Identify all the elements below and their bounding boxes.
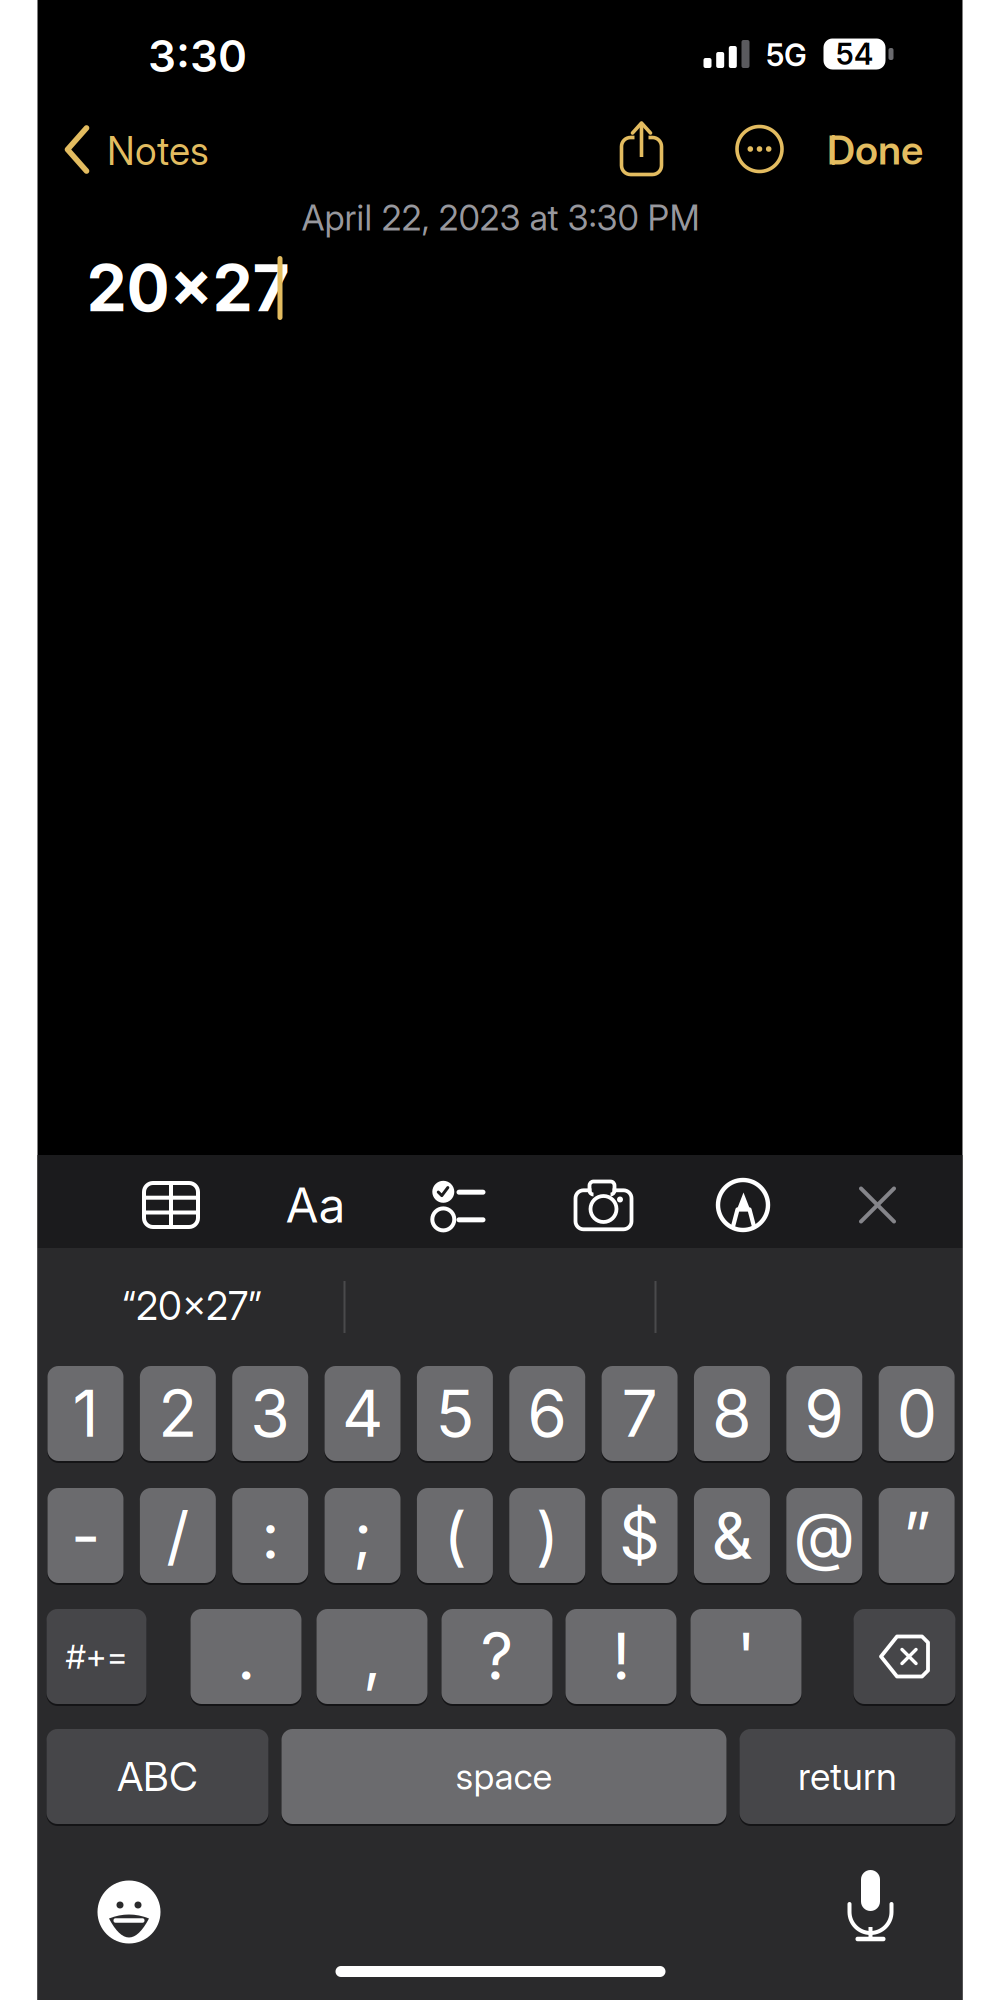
button[interactable]: ? (441, 1609, 552, 1704)
button[interactable]: Done (827, 126, 923, 174)
button[interactable]: “20x27” (122, 1283, 262, 1329)
staticText: ' (736, 1618, 755, 1695)
button[interactable]: . (190, 1609, 301, 1704)
staticText: 9 (804, 1375, 844, 1452)
button[interactable]: ) (509, 1488, 585, 1583)
button[interactable]: Insert photo (574, 1183, 632, 1230)
staticText: 2 (158, 1375, 197, 1452)
button[interactable]: Emoji (97, 1880, 160, 1943)
staticText: “20x27” (122, 1283, 262, 1329)
button[interactable]: Markup (717, 1179, 769, 1231)
button[interactable]: ” (879, 1488, 955, 1583)
button[interactable]: 0 (879, 1366, 955, 1461)
button[interactable]: 7 (602, 1366, 678, 1461)
staticText: ” (903, 1497, 931, 1574)
staticText: ! (612, 1618, 630, 1695)
button[interactable]: & (694, 1488, 770, 1583)
staticText: 1 (72, 1375, 98, 1452)
button[interactable]: - (47, 1488, 123, 1583)
button[interactable]: 9 (786, 1366, 862, 1461)
staticText: @ (793, 1497, 855, 1574)
staticText: & (711, 1497, 752, 1574)
staticText: 4 (342, 1375, 383, 1452)
staticText: 5 (435, 1375, 474, 1452)
staticText: 3 (250, 1375, 290, 1452)
button[interactable]: 5 (417, 1366, 493, 1461)
button[interactable]: Share (619, 120, 663, 174)
staticText: Aa (285, 1176, 345, 1234)
button[interactable]: 1 (47, 1366, 123, 1461)
staticText: / (166, 1497, 189, 1574)
button[interactable]: 6 (509, 1366, 585, 1461)
button[interactable]: @ (786, 1488, 862, 1583)
staticText: 8 (712, 1375, 752, 1452)
staticText: Done (827, 126, 923, 174)
button[interactable]: ( (417, 1488, 493, 1583)
staticText: ? (480, 1618, 513, 1695)
staticText: return (798, 1754, 897, 1799)
button[interactable]: : (232, 1488, 308, 1583)
button[interactable]: Close toolbar (861, 1188, 894, 1221)
button[interactable]: 8 (694, 1366, 770, 1461)
button[interactable]: $ (602, 1488, 678, 1583)
staticText: - (71, 1497, 100, 1574)
staticText: 3:30 (148, 29, 247, 83)
staticText: ; (353, 1497, 372, 1574)
staticText: ) (536, 1497, 559, 1574)
staticText: ABC (117, 1752, 198, 1801)
button[interactable]: return (739, 1729, 955, 1824)
staticText: 7 (622, 1375, 658, 1452)
staticText: 20x27 (86, 249, 289, 327)
button[interactable]: space (281, 1729, 726, 1824)
button[interactable]: 2 (140, 1366, 216, 1461)
staticText: $ (619, 1497, 660, 1574)
button[interactable]: #+= (46, 1609, 146, 1704)
staticText: . (237, 1618, 255, 1695)
staticText: space (455, 1755, 552, 1798)
button[interactable]: Notes (59, 125, 209, 175)
staticText: April 22, 2023 at 3:30 PM (301, 197, 699, 239)
button[interactable]: ' (690, 1609, 801, 1704)
button[interactable]: 3 (232, 1366, 308, 1461)
staticText: : (261, 1497, 279, 1574)
staticText: 5G (766, 36, 807, 73)
staticText: Notes (107, 128, 209, 174)
button[interactable]: More (736, 126, 782, 172)
button[interactable]: Checklist (430, 1181, 487, 1231)
button[interactable]: Format (280, 1175, 350, 1235)
staticText: 0 (897, 1375, 937, 1452)
staticText: 54 (836, 36, 873, 72)
button[interactable]: ; (324, 1488, 400, 1583)
button[interactable]: , (316, 1609, 427, 1704)
button[interactable]: ABC (46, 1729, 268, 1824)
staticText: , (363, 1618, 381, 1695)
button[interactable]: Dictate (848, 1879, 892, 1941)
staticText: 6 (527, 1375, 567, 1452)
button[interactable]: Insert table (144, 1183, 198, 1227)
button[interactable]: 4 (324, 1366, 400, 1461)
button[interactable]: Delete (853, 1609, 955, 1704)
button[interactable]: / (140, 1488, 216, 1583)
staticText: ( (443, 1497, 466, 1574)
button[interactable]: ! (565, 1609, 676, 1704)
staticText: #+= (65, 1636, 127, 1677)
